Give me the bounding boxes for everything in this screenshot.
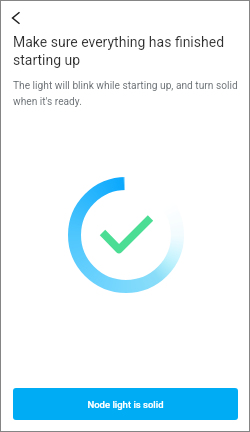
button[interactable]: Node light is solid bbox=[13, 388, 238, 420]
button[interactable]: Back bbox=[4, 6, 28, 30]
staticText: Make sure everything has finished starti… bbox=[13, 34, 229, 69]
staticText: Node light is solid bbox=[87, 399, 164, 410]
staticText: The light will blink while starting up, … bbox=[13, 80, 242, 107]
